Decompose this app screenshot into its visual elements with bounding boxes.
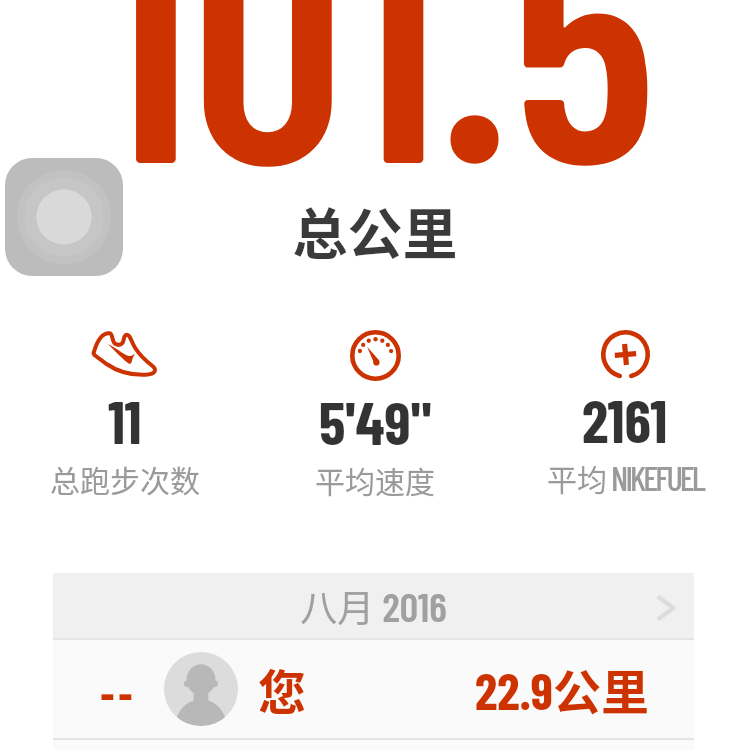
- staticText: 101.5: [2, 0, 750, 231]
- staticText: 总公里: [0, 190, 750, 270]
- staticText: 总跑步次数: [50, 457, 200, 500]
- staticText: 2161: [582, 383, 668, 455]
- button[interactable]: Average NikeFuel: [500, 330, 750, 499]
- staticText: 11: [108, 384, 142, 456]
- other: Average NikeFuel: [601, 330, 650, 379]
- staticText: --: [61, 666, 172, 725]
- other: Next month: [636, 573, 694, 638]
- button[interactable]: --: [53, 640, 694, 738]
- staticText: 平均速度: [315, 458, 435, 501]
- other: Average pace: [350, 330, 401, 381]
- staticText: 您: [258, 654, 307, 724]
- staticText: 5'49": [319, 385, 432, 457]
- button[interactable]: Average pace: [250, 330, 500, 501]
- staticText: 22.9公里: [307, 654, 649, 724]
- button[interactable]: Runs: [0, 330, 250, 500]
- other: Runs: [91, 330, 159, 380]
- button[interactable]: 八月 2016: [53, 573, 694, 638]
- staticText: 八月 2016: [111, 579, 636, 633]
- staticText: 平均 NIKEFUEL: [547, 456, 703, 499]
